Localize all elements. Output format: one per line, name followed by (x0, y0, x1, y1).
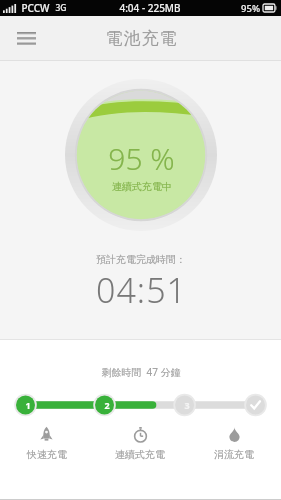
staticText: 2 (104, 399, 110, 411)
staticText: 剩餘時間 47 分鐘 (101, 365, 181, 379)
button[interactable]: 連續式充電 (93, 426, 187, 461)
staticText: 3G (55, 2, 67, 14)
staticText: 預計充電完成時間： (96, 253, 186, 266)
staticText: 連續式充電 (115, 448, 165, 461)
staticText: 4:04 - 225MB (119, 1, 181, 15)
button[interactable]: 涓流充電 (187, 426, 281, 461)
staticText: 95 % (108, 138, 175, 179)
staticText: PCCW (21, 1, 50, 15)
button[interactable]: 快速充電 (0, 426, 93, 461)
button[interactable]: Menu (6, 18, 46, 58)
staticText: 04:51 (96, 267, 187, 313)
staticText: 1 (25, 399, 31, 411)
staticText: 3 (184, 399, 190, 411)
staticText: 95% (241, 2, 260, 15)
staticText: 快速充電 (27, 448, 67, 461)
staticText: 電池充電 (105, 28, 177, 49)
staticText: 連續式充電中 (112, 180, 172, 193)
staticText: 涓流充電 (214, 448, 254, 461)
